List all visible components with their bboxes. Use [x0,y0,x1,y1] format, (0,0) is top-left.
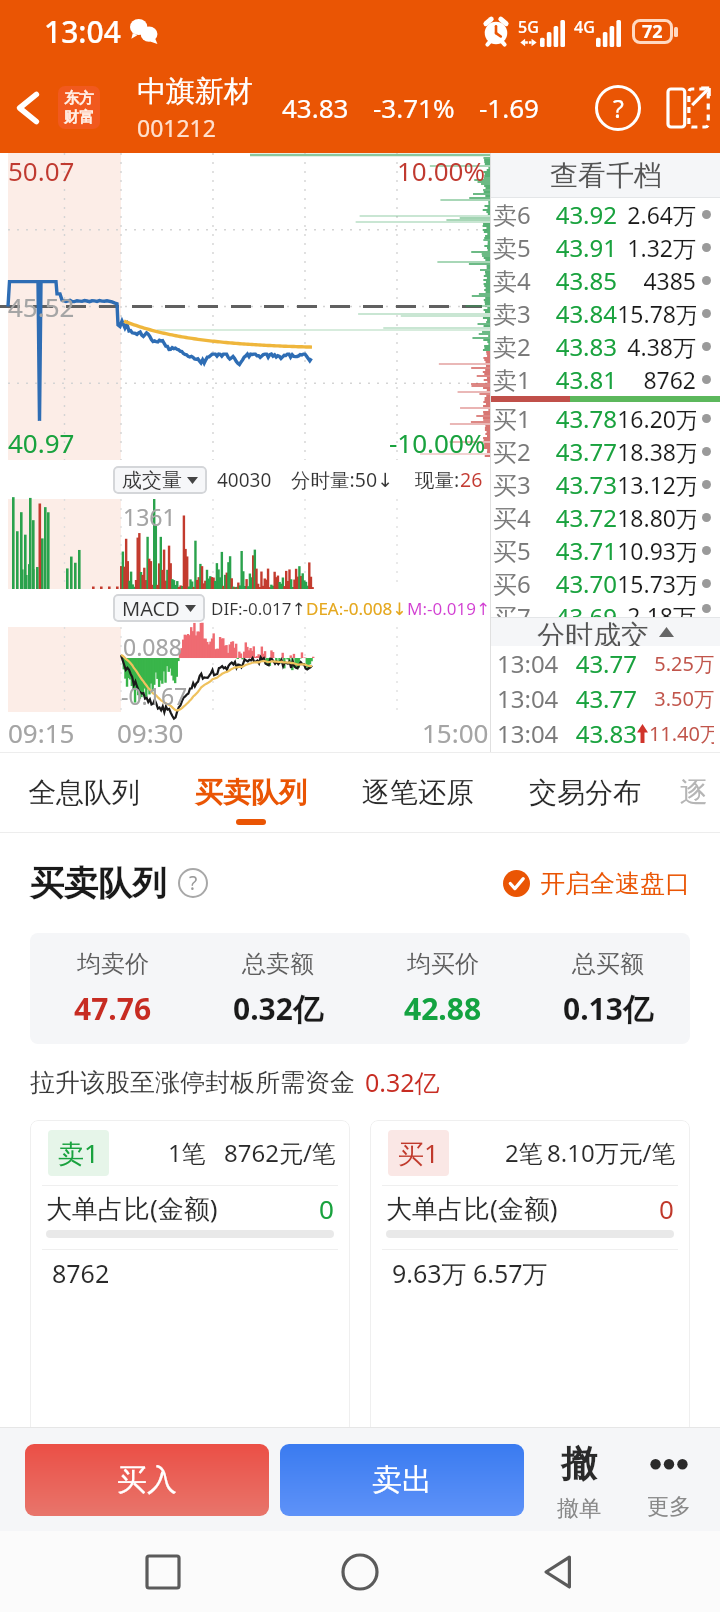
staticText: -10.00% [389,425,486,460]
button[interactable]: 卖2 [491,330,720,363]
staticText: 更多 [647,1493,691,1521]
staticText: 均卖价 [77,949,149,979]
staticText: 43.77 [561,682,637,715]
staticText: 卖1 [493,363,539,396]
staticText: 43.73 [539,468,617,501]
staticText: 15:00 [422,715,489,750]
staticText: 拉升该股至涨停封板所需资金 [30,1067,355,1098]
button[interactable]: Recents [128,1537,198,1607]
staticText: 72 [642,19,663,44]
button[interactable]: 卖5 [491,231,720,264]
staticText: 4.38万 [617,331,696,362]
button[interactable]: 卖3 [491,297,720,330]
staticText: 买4 [493,501,539,534]
staticText: 43.83 [561,717,637,750]
staticText: 43.77 [539,435,617,468]
button[interactable]: MACD [113,594,205,622]
staticText: 买5 [493,534,539,567]
staticText: 13:04 [44,11,121,52]
staticText: 45.52 [8,289,75,324]
button[interactable]: 卖出 [280,1444,524,1516]
button[interactable]: 买入 [25,1444,269,1516]
staticText: 买3 [493,468,539,501]
staticText: 18.80万 [617,502,696,533]
staticText: 总卖额 [242,949,314,979]
button[interactable]: 13:04 [491,646,720,681]
staticText: 8762 [52,1256,110,1290]
button[interactable]: 买1 [491,402,720,435]
staticText: 3.50万 [648,685,714,712]
button[interactable]: 买7 [491,600,720,617]
button[interactable]: 卖1 [491,363,720,396]
staticText: 15.78万 [617,298,696,329]
button[interactable]: 卖6 [491,198,720,231]
button[interactable]: 买4 [491,501,720,534]
staticText: 47.76 [74,988,152,1029]
button[interactable]: 交易分布 [501,752,668,833]
staticText: 交易分布 [529,775,641,810]
staticText: 撤 [561,1441,597,1486]
button[interactable]: 买3 [491,468,720,501]
button[interactable]: Info [178,868,208,898]
staticText: 13.12万 [617,469,696,500]
button[interactable]: 全息队列 [0,752,167,833]
staticText: 买6 [493,567,539,600]
staticText: 2笔 [505,1136,543,1169]
button[interactable]: 开启全速盘口 [503,868,690,899]
button[interactable]: 买2 [491,435,720,468]
button[interactable]: Back [523,1537,593,1607]
staticText: DEA:-0.008↓ [306,597,407,620]
staticText: ? [189,870,198,896]
staticText: M:-0.019↑ [407,597,490,620]
staticText: 0.32亿 [233,988,323,1029]
staticText: 卖1 [58,1135,99,1171]
staticText: 1笔 [168,1136,206,1169]
button[interactable]: More [626,1428,712,1531]
staticText: 11.40万 [648,720,714,747]
staticText: 买入 [117,1461,177,1499]
staticText: 0.32亿 [365,1065,440,1099]
staticText: 东方 [64,89,94,108]
staticText: 0.13亿 [563,988,653,1029]
staticText: 卖4 [493,264,539,297]
button[interactable]: Home [325,1537,395,1607]
staticText: 43.70 [539,567,617,600]
staticText: 50.07 [8,153,75,188]
button[interactable]: 分时成交 [491,618,720,646]
staticText: 13:04 [497,682,561,715]
button[interactable]: 查看千档 [491,153,720,197]
button[interactable]: Help [586,76,650,140]
staticText: 43.85 [539,264,617,297]
staticText: 43.78 [539,402,617,435]
staticText: 买卖队列 [195,775,307,810]
staticText: 2.64万 [617,199,696,230]
button[interactable]: 13:04 [491,716,720,751]
button[interactable]: 逐笔还原 [334,752,501,833]
button[interactable]: Back [0,62,56,153]
button[interactable]: 买5 [491,534,720,567]
staticText: 42.88 [404,988,482,1029]
staticText: 13:04 [497,717,561,750]
staticText: 查看千档 [550,158,662,193]
button[interactable]: 卖1 [30,1120,350,1450]
staticText: 9.63万 [392,1256,467,1290]
button[interactable]: 买卖队列 [167,752,334,833]
button[interactable]: 成交量 [113,466,207,494]
staticText: 卖出 [372,1461,432,1499]
staticText: 43.69 [539,600,617,617]
staticText: 4385 [617,265,696,296]
staticText: -0.167 [121,680,188,711]
button[interactable]: Screenshot [658,78,718,138]
button[interactable]: 买1 [370,1120,690,1450]
staticText: 6.57万 [473,1256,548,1290]
button[interactable]: 买6 [491,567,720,600]
staticText: 1.32万 [617,232,696,263]
button[interactable]: 卖4 [491,264,720,297]
staticText: 2.18万 [617,600,696,617]
button[interactable]: 13:04 [491,681,720,716]
staticText: 16.20万 [617,403,696,434]
staticText: 0.088 [123,631,182,662]
staticText: 现量: [415,466,460,493]
staticText: 买2 [493,435,539,468]
button[interactable]: 撤 [536,1428,622,1531]
